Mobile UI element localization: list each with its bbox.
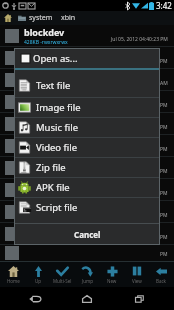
button[interactable]: Zip file <box>14 158 160 177</box>
button[interactable]: Home folder <box>3 13 13 23</box>
staticText: Multi-Sel <box>53 278 72 284</box>
button[interactable]: Video file <box>14 138 160 157</box>
staticText: system <box>29 13 53 23</box>
button[interactable]: Back <box>149 262 173 287</box>
staticText: New <box>107 278 117 284</box>
button[interactable]: Text file <box>14 74 160 97</box>
button[interactable]: blockdev <box>0 25 174 46</box>
staticText: 3:42 <box>156 0 172 11</box>
staticText: Text file <box>36 79 71 92</box>
button[interactable]: Multi-Sel <box>50 262 74 287</box>
staticText: PM <box>160 102 168 109</box>
staticText: PM <box>160 168 168 175</box>
staticText: 428KB -rwxrwxrwx <box>24 39 68 46</box>
button[interactable]: Jump <box>75 262 99 287</box>
button[interactable]: Cancel <box>14 224 160 245</box>
staticText: Video file <box>36 141 78 154</box>
button[interactable]: Home <box>70 287 104 310</box>
staticText: View <box>132 278 142 284</box>
staticText: Image file <box>36 101 81 114</box>
button[interactable]: PM <box>0 91 174 112</box>
staticText: APK file <box>36 181 70 194</box>
button[interactable]: Music file <box>14 118 160 137</box>
button[interactable]: PM <box>0 223 174 244</box>
button[interactable]: Script file <box>14 198 160 217</box>
button[interactable]: Home <box>1 262 25 287</box>
staticText: Jul 05, 2012 04:40:23 PM <box>111 36 168 43</box>
staticText: Open as... <box>33 52 78 65</box>
button[interactable]: Image file <box>14 98 160 117</box>
button[interactable]: Recents <box>122 287 156 310</box>
staticText: PM <box>160 124 168 131</box>
staticText: blockdev <box>24 26 65 38</box>
button[interactable]: PM <box>0 179 174 200</box>
staticText: PM <box>160 146 168 153</box>
staticText: Zip file <box>36 161 66 174</box>
button[interactable]: PM <box>0 245 174 261</box>
button[interactable]: PM <box>0 113 174 134</box>
button[interactable]: View <box>125 262 149 287</box>
staticText: Script file <box>36 201 78 214</box>
button[interactable]: APK file <box>14 178 160 197</box>
button[interactable]: xbin <box>61 13 76 23</box>
staticText: PM <box>160 212 168 219</box>
staticText: Cancel <box>74 229 101 240</box>
button[interactable]: PM <box>0 157 174 178</box>
staticText: xbin <box>61 13 76 23</box>
staticText: Music file <box>36 121 79 134</box>
staticText: PM <box>160 58 168 65</box>
button[interactable]: New <box>100 262 124 287</box>
staticText: Home <box>7 278 20 284</box>
staticText: Jump <box>82 278 93 284</box>
button[interactable]: PM <box>0 201 174 222</box>
button[interactable]: Back <box>18 287 52 310</box>
button[interactable]: PM <box>0 47 174 68</box>
button[interactable]: AM <box>0 69 174 90</box>
button[interactable]: system <box>18 13 53 23</box>
staticText: PM <box>160 234 168 241</box>
staticText: Back <box>156 278 167 284</box>
staticText: AM <box>160 80 168 87</box>
staticText: PM <box>160 190 168 197</box>
button[interactable]: Up <box>26 262 50 287</box>
staticText: Up <box>35 278 42 284</box>
staticText: PM <box>160 251 168 258</box>
button[interactable]: PM <box>0 135 174 156</box>
